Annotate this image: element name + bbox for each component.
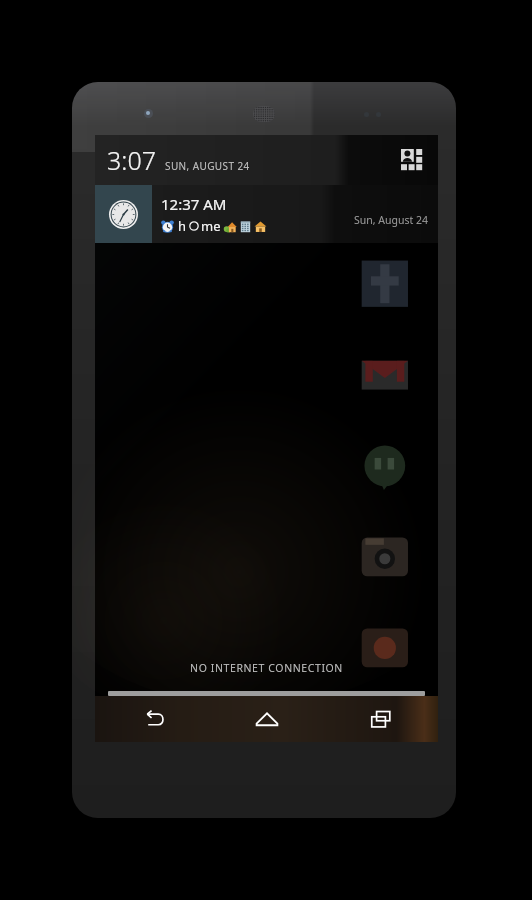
- button[interactable]: Quick settings: [395, 143, 429, 177]
- staticText: me: [201, 217, 221, 235]
- staticText: 12:37 AM: [161, 194, 227, 214]
- staticText: h: [178, 217, 187, 235]
- button[interactable]: Home: [210, 696, 324, 742]
- staticText: 3:07: [107, 143, 156, 177]
- button[interactable]: Recent apps: [324, 696, 438, 742]
- button[interactable]: 12:37 AM: [95, 185, 438, 243]
- staticText: Sun, August 24: [354, 213, 428, 227]
- button[interactable]: Back: [95, 696, 210, 742]
- staticText: NO INTERNET CONNECTION: [95, 661, 438, 675]
- staticText: SUN, AUGUST 24: [165, 159, 250, 173]
